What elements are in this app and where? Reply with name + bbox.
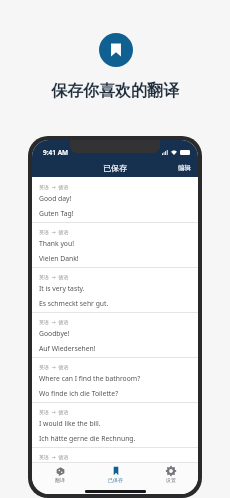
staticText: 编辑 (178, 164, 191, 172)
staticText: Guten Tag! (39, 209, 74, 218)
staticText: 英语 → 德语 (39, 364, 69, 371)
staticText: 英语 → 德语 (39, 409, 69, 416)
button[interactable]: 已保存 (88, 465, 143, 484)
button[interactable]: 英语 → 德语 (32, 313, 198, 357)
button[interactable]: 英语 → 德语 (32, 358, 198, 402)
staticText: Where can I find the bathroom? (39, 374, 141, 383)
staticText: I would like the bill. (39, 419, 101, 428)
staticText: Vielen Dank! (39, 254, 79, 263)
button[interactable]: 英语 → 德语 (32, 178, 198, 222)
button[interactable]: 设置 (143, 465, 198, 484)
button[interactable]: 编辑 (171, 161, 198, 175)
staticText: 英语 → 德语 (39, 274, 69, 281)
staticText: 英语 → 德语 (39, 319, 69, 326)
other: Saved translations (99, 33, 133, 67)
staticText: 设置 (166, 477, 176, 483)
staticText: 9:41 AM (43, 148, 69, 157)
staticText: 英语 → 德语 (39, 454, 69, 461)
staticText: Es schmeckt sehr gut. (39, 299, 109, 308)
staticText: Thank you! (39, 239, 74, 248)
button[interactable]: 翻译 (32, 465, 88, 484)
staticText: Auf Wiedersehen! (39, 344, 96, 353)
staticText: 英语 → 德语 (39, 184, 69, 191)
staticText: Goodbye! (39, 329, 70, 338)
staticText: 英语 → 德语 (39, 229, 69, 236)
staticText: 已保存 (108, 477, 123, 483)
staticText: Ich hätte gerne die Rechnung. (39, 434, 136, 443)
staticText: 翻译 (55, 477, 65, 483)
button[interactable]: 英语 → 德语 (32, 448, 198, 462)
staticText: Good day! (39, 194, 72, 203)
button[interactable]: 英语 → 德语 (32, 268, 198, 312)
button[interactable]: 英语 → 德语 (32, 223, 198, 267)
staticText: Wo finde ich die Toilette? (39, 389, 119, 398)
staticText: It is very tasty. (39, 284, 85, 293)
staticText: 保存你喜欢的翻译 (0, 81, 230, 101)
staticText: 已保存 (103, 163, 127, 173)
button[interactable]: 英语 → 德语 (32, 403, 198, 447)
